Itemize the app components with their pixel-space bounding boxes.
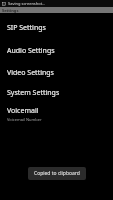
button[interactable]: Voicemail: [0, 103, 113, 125]
staticText: Settings: [2, 8, 19, 13]
staticText: Voicemail: [7, 106, 39, 116]
button[interactable]: Video Settings: [0, 62, 113, 83]
staticText: SIP Settings: [7, 23, 46, 33]
staticText: Saving screenshot...: [8, 1, 46, 6]
button[interactable]: System Settings: [0, 83, 113, 103]
button[interactable]: Audio Settings: [0, 39, 113, 62]
staticText: Video Settings: [7, 68, 54, 78]
staticText: Voicemail Number: [7, 117, 42, 122]
staticText: System Settings: [7, 88, 60, 98]
button[interactable]: Copied to clipboard: [28, 167, 86, 180]
button[interactable]: SIP Settings: [0, 17, 113, 39]
staticText: Audio Settings: [7, 46, 55, 56]
staticText: Copied to clipboard: [34, 170, 80, 177]
